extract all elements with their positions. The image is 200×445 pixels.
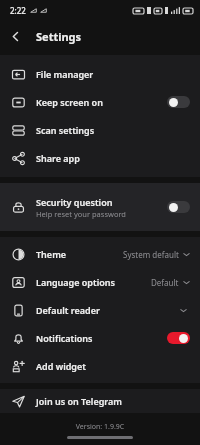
- button[interactable]: Toggle off: [167, 201, 190, 213]
- staticText: Language options: [36, 276, 115, 288]
- staticText: Join us on Telegram: [36, 395, 122, 407]
- staticText: Notifications: [36, 332, 93, 344]
- staticText: Default reader: [36, 304, 100, 316]
- button[interactable]: Toggle off: [167, 96, 190, 108]
- button[interactable]: Toggle on: [167, 332, 190, 344]
- button[interactable]: Expand: [176, 303, 190, 317]
- button[interactable]: Notifications: [0, 324, 200, 352]
- button[interactable]: Scan settings: [0, 116, 200, 144]
- button[interactable]: File manager: [0, 60, 200, 88]
- staticText: Settings: [36, 29, 82, 44]
- button[interactable]: Language options: [0, 268, 200, 296]
- button[interactable]: Add widget: [0, 352, 200, 380]
- staticText: 2:22: [10, 5, 26, 16]
- button[interactable]: Default: [151, 274, 190, 291]
- staticText: File manager: [36, 68, 94, 80]
- button[interactable]: Security question: [0, 183, 200, 231]
- staticText: Version: 1.9.9C: [0, 422, 200, 432]
- staticText: Theme: [36, 248, 67, 260]
- staticText: System default: [123, 249, 179, 260]
- button[interactable]: Theme: [0, 240, 200, 268]
- staticText: Default: [151, 277, 179, 288]
- button[interactable]: System default: [123, 246, 190, 263]
- staticText: Security question: [36, 196, 113, 208]
- staticText: Add widget: [36, 360, 86, 372]
- button[interactable]: Keep screen on: [0, 88, 200, 116]
- button[interactable]: Back: [0, 21, 30, 51]
- staticText: Scan settings: [36, 124, 95, 136]
- staticText: Keep screen on: [36, 96, 103, 108]
- button[interactable]: Share app: [0, 144, 200, 172]
- button[interactable]: Default reader: [0, 296, 200, 324]
- button[interactable]: Join us on Telegram: [0, 389, 200, 413]
- staticText: Share app: [36, 152, 80, 164]
- staticText: Help reset your password: [36, 209, 126, 219]
